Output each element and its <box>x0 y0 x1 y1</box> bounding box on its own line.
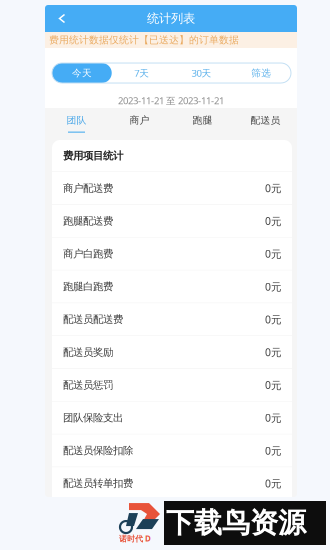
staticText: 0元 <box>265 345 281 359</box>
staticText: 0元 <box>265 476 281 490</box>
staticText: 配送员 <box>250 114 280 126</box>
button[interactable]: 跑腿白跑费 <box>52 270 292 303</box>
staticText: 跑腿 <box>192 114 212 126</box>
button[interactable]: 配送员配送费 <box>52 303 292 336</box>
staticText: 团队 <box>66 114 86 126</box>
button[interactable]: 筛选 <box>231 63 291 83</box>
staticText: 0元 <box>265 312 281 326</box>
button[interactable]: 配送员惩罚 <box>52 369 292 402</box>
staticText: 配送员转单扣费 <box>63 477 133 490</box>
staticText: 跑腿配送费 <box>63 214 113 227</box>
button[interactable]: 商户 <box>108 108 171 140</box>
staticText: 诺时代 D <box>119 533 151 544</box>
staticText: 今天 <box>72 67 92 79</box>
button[interactable]: 跑腿配送费 <box>52 205 292 238</box>
staticText: 0元 <box>265 214 281 228</box>
staticText: 团队保险支出 <box>63 411 123 424</box>
staticText: 配送员奖励 <box>63 346 113 359</box>
staticText: 0元 <box>265 247 281 261</box>
staticText: 筛选 <box>251 67 271 79</box>
staticText: 0元 <box>265 279 281 294</box>
staticText: 下载鸟资源 <box>166 505 306 541</box>
staticText: 费用项目统计 <box>63 149 123 162</box>
staticText: 0元 <box>265 443 281 458</box>
button[interactable]: 配送员转单扣费 <box>52 467 292 499</box>
button[interactable]: 团队保险支出 <box>52 402 292 434</box>
staticText: 7天 <box>134 66 149 80</box>
staticText: 跑腿白跑费 <box>63 280 113 293</box>
staticText: 2023-11-21 至 2023-11-21 <box>118 94 224 107</box>
staticText: 30天 <box>191 66 211 80</box>
button[interactable]: 商户配送费 <box>52 172 292 205</box>
button[interactable]: 配送员保险扣除 <box>52 434 292 467</box>
button[interactable]: 团队 <box>45 108 108 140</box>
staticText: 商户配送费 <box>63 182 113 195</box>
staticText: 配送员保险扣除 <box>63 444 133 457</box>
staticText: 统计列表 <box>147 11 195 26</box>
button[interactable]: 商户白跑费 <box>52 238 292 270</box>
staticText: 配送员惩罚 <box>63 378 113 391</box>
button[interactable]: 配送员奖励 <box>52 336 292 369</box>
staticText: 费用统计数据仅统计【已送达】的订单数据 <box>49 34 239 46</box>
button[interactable]: 返回 <box>45 5 77 32</box>
button[interactable]: 配送员 <box>234 108 297 140</box>
staticText: 0元 <box>265 181 281 195</box>
staticText: 商户白跑费 <box>63 247 113 260</box>
button[interactable]: 7天 <box>112 63 172 83</box>
button[interactable]: 今天 <box>52 63 112 83</box>
button[interactable]: 30天 <box>171 63 231 83</box>
staticText: 0元 <box>265 378 281 392</box>
staticText: 商户 <box>129 114 149 126</box>
staticText: 配送员配送费 <box>63 313 123 326</box>
button[interactable]: 跑腿 <box>171 108 234 140</box>
staticText: 0元 <box>265 411 281 425</box>
